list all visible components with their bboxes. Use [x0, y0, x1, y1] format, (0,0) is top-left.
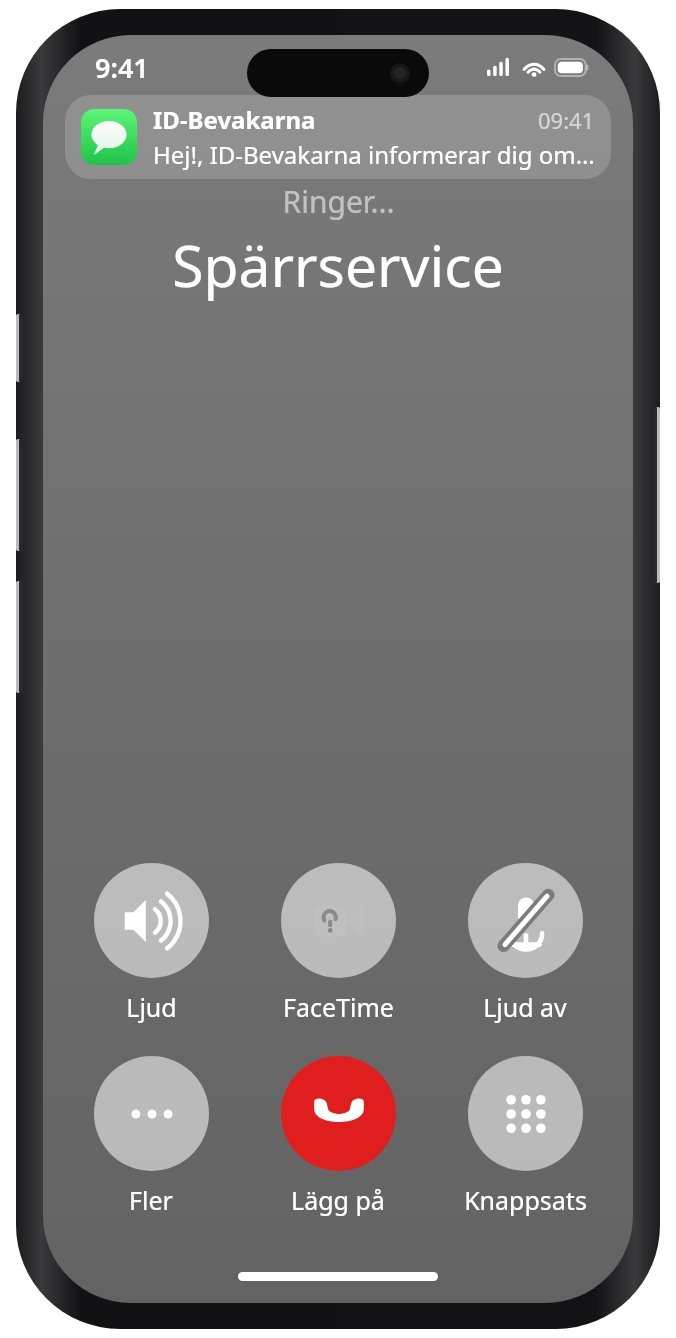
staticText: Knappsats — [464, 1183, 587, 1217]
staticText: Hej!, ID-Bevakarna informerar dig om… — [153, 138, 595, 171]
button[interactable]: End call — [276, 1056, 400, 1217]
staticText: Ljud av — [483, 990, 567, 1024]
button[interactable]: FaceTime — [276, 863, 400, 1024]
staticText: Ljud — [126, 990, 177, 1024]
staticText: FaceTime — [283, 990, 394, 1024]
staticText: Spärrservice — [172, 226, 504, 304]
button[interactable]: Mute — [463, 863, 587, 1024]
staticText: ID-Bevakarna — [153, 103, 538, 136]
staticText: 9:41 — [95, 49, 149, 86]
staticText: 09:41 — [538, 105, 595, 135]
button[interactable]: Keypad — [463, 1056, 587, 1217]
staticText: Fler — [129, 1183, 173, 1217]
button[interactable]: ID-Bevakarna — [65, 95, 611, 179]
button[interactable]: Speaker — [89, 863, 213, 1024]
staticText: Ringer... — [282, 181, 395, 222]
staticText: Lägg på — [291, 1183, 385, 1217]
button[interactable]: More — [89, 1056, 213, 1217]
